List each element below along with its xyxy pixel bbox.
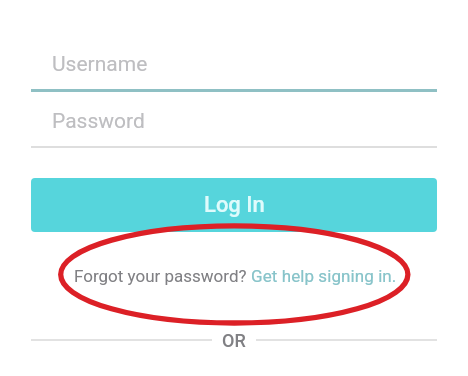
staticText: Username (52, 52, 148, 77)
staticText: Password (52, 109, 145, 134)
button[interactable]: Username (31, 46, 437, 92)
button[interactable]: Log In (31, 178, 437, 232)
button[interactable]: Password (31, 102, 437, 148)
staticText: OR (222, 330, 246, 351)
button[interactable]: Get help signing in. (251, 266, 397, 286)
staticText: Forgot your password? (74, 266, 251, 286)
staticText: Log In (204, 192, 265, 218)
